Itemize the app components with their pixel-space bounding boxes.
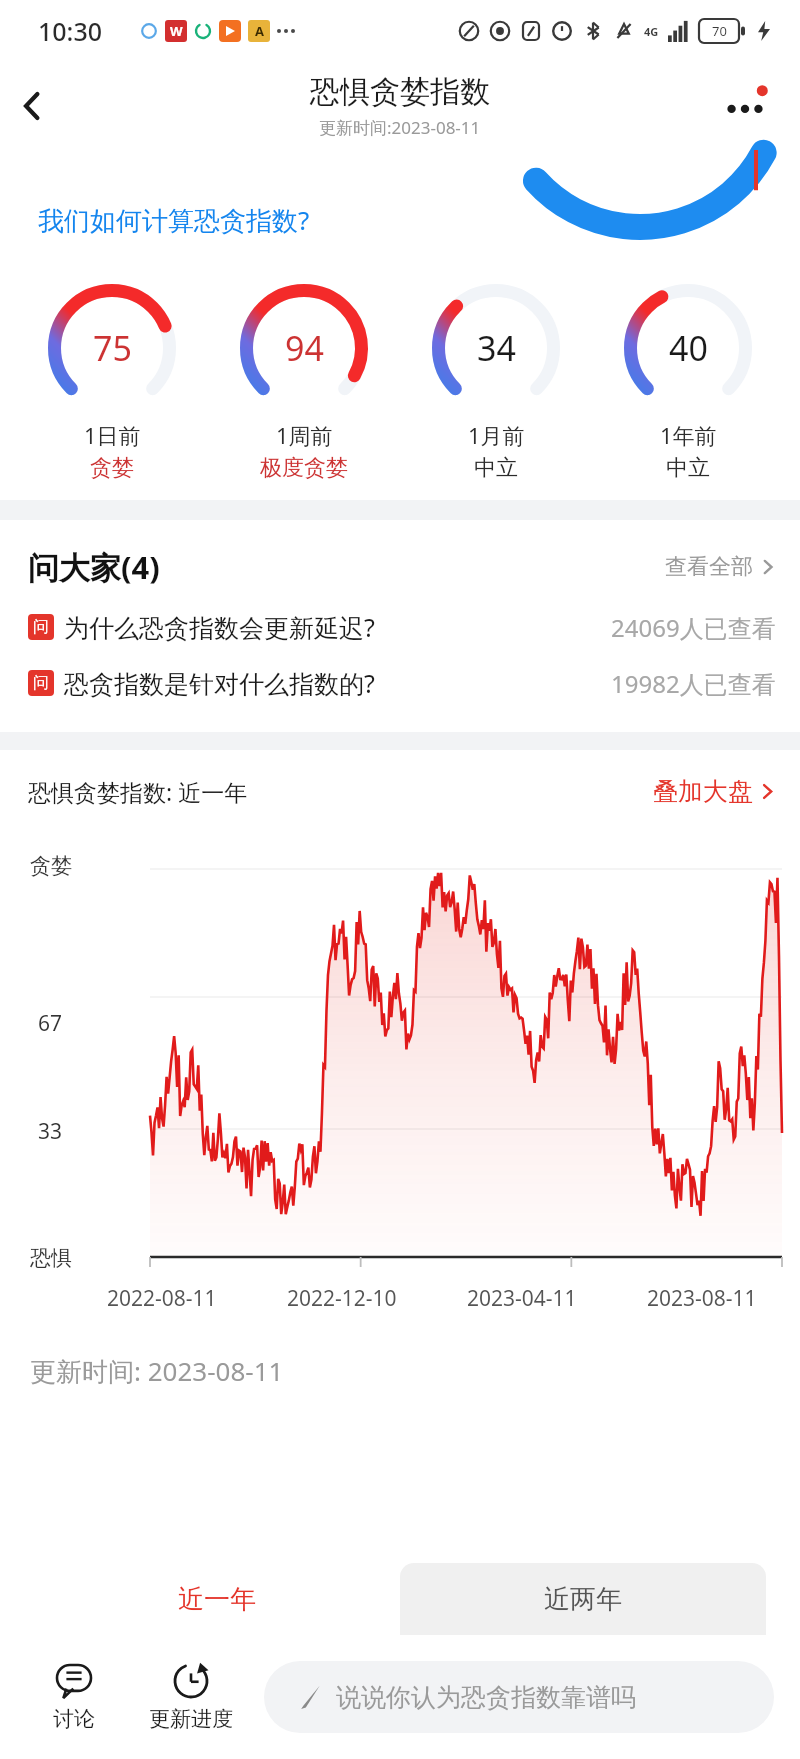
staticText: 贪婪 bbox=[30, 853, 72, 879]
button[interactable]: 近两年 bbox=[400, 1563, 766, 1635]
staticText: 33 bbox=[38, 1117, 63, 1146]
button[interactable]: 34 bbox=[416, 278, 576, 482]
button[interactable]: More options bbox=[714, 75, 776, 137]
staticText: 恐贪指数是针对什么指数的? bbox=[64, 666, 375, 700]
button[interactable]: 近一年 bbox=[34, 1563, 400, 1635]
button[interactable]: 查看全部 bbox=[665, 553, 776, 581]
staticText: 2022-08-11 bbox=[107, 1284, 217, 1313]
staticText: 40 bbox=[669, 325, 708, 371]
staticText: 问大家(4) bbox=[28, 546, 160, 588]
staticText: 10:30 bbox=[38, 14, 103, 48]
staticText: 恐惧贪婪指数 bbox=[310, 73, 490, 111]
staticText: 为什么恐贪指数会更新延迟? bbox=[64, 610, 375, 644]
staticText: 67 bbox=[38, 1009, 63, 1038]
staticText: 中立 bbox=[474, 454, 518, 482]
staticText: 19982人已查看 bbox=[611, 667, 776, 700]
staticText: 更新时间:2023-08-11 bbox=[319, 116, 481, 139]
staticText: 24069人已查看 bbox=[611, 611, 776, 644]
staticText: 恐惧贪婪指数: 近一年 bbox=[28, 776, 248, 807]
staticText: 2023-08-11 bbox=[647, 1284, 757, 1313]
staticText: 1周前 bbox=[276, 420, 333, 450]
button[interactable]: 问 bbox=[0, 604, 800, 650]
button[interactable]: 问 bbox=[0, 660, 800, 706]
staticText: 更新时间: 2023-08-11 bbox=[30, 1353, 284, 1389]
button[interactable]: 说说你认为恐贪指数靠谱吗 bbox=[264, 1661, 774, 1733]
staticText: 1月前 bbox=[468, 420, 525, 450]
staticText: 94 bbox=[285, 325, 324, 371]
button[interactable]: 94 bbox=[224, 278, 384, 482]
staticText: 查看全部 bbox=[665, 553, 753, 581]
staticText: 75 bbox=[93, 325, 132, 371]
staticText: 1年前 bbox=[660, 420, 717, 450]
staticText: 更新进度 bbox=[149, 1706, 233, 1732]
staticText: 2022-12-10 bbox=[287, 1284, 397, 1313]
staticText: 说说你认为恐贪指数靠谱吗 bbox=[336, 1682, 636, 1713]
staticText: 讨论 bbox=[53, 1706, 95, 1732]
staticText: 34 bbox=[477, 325, 516, 371]
button[interactable]: 我们如何计算恐贪指数? bbox=[38, 202, 310, 238]
staticText: 贪婪 bbox=[90, 454, 134, 482]
button[interactable]: 40 bbox=[608, 278, 768, 482]
staticText: 问 bbox=[33, 617, 49, 637]
button[interactable]: Back bbox=[0, 74, 64, 138]
staticText: 中立 bbox=[666, 454, 710, 482]
button[interactable]: 75 bbox=[32, 278, 192, 482]
staticText: 2023-04-11 bbox=[467, 1284, 577, 1313]
staticText: 恐惧 bbox=[30, 1245, 72, 1271]
staticText: W bbox=[170, 22, 183, 40]
button[interactable]: 恐惧贪婪指数: 近一年 bbox=[0, 750, 800, 829]
staticText: 近两年 bbox=[544, 1583, 622, 1616]
staticText: 问 bbox=[33, 673, 49, 693]
staticText: 叠加大盘 bbox=[653, 776, 753, 807]
staticText: 近一年 bbox=[178, 1583, 256, 1616]
button[interactable]: 讨论 bbox=[26, 1662, 122, 1732]
staticText: 1日前 bbox=[84, 420, 141, 450]
staticText: A bbox=[255, 22, 264, 40]
staticText: 4G bbox=[644, 24, 659, 39]
staticText: 70 bbox=[712, 22, 727, 40]
staticText: 极度贪婪 bbox=[260, 454, 348, 482]
button[interactable]: 更新进度 bbox=[136, 1662, 246, 1732]
